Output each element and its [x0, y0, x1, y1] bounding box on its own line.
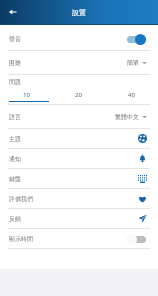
button[interactable]: 聲音 [0, 27, 158, 50]
staticText: 反饋 [9, 215, 21, 223]
button[interactable]: 20 [52, 89, 105, 100]
button[interactable]: Keyboard [0, 169, 158, 188]
button[interactable]: 顯示時間 [0, 229, 158, 248]
button[interactable]: Back [6, 5, 20, 19]
staticText: 鍵盤 [9, 175, 21, 183]
button[interactable]: 困難 [0, 51, 158, 74]
staticText: 主題 [9, 135, 21, 143]
staticText: 問題 [9, 78, 21, 86]
staticText: 設置 [72, 8, 86, 17]
button[interactable]: Theme [0, 129, 158, 148]
button[interactable]: Feedback [0, 209, 158, 228]
staticText: 20 [75, 91, 82, 99]
button[interactable]: 10 [0, 89, 52, 100]
staticText: 評價我們 [9, 195, 33, 203]
staticText: 困難 [9, 59, 21, 67]
button[interactable]: 40 [105, 89, 158, 100]
button[interactable]: Rate us [0, 189, 158, 208]
staticText: 語言 [9, 113, 21, 121]
button[interactable]: Notifications [0, 149, 158, 168]
staticText: 簡單 [127, 59, 139, 67]
staticText: 40 [128, 91, 135, 99]
staticText: 繁體中文 [115, 113, 139, 121]
staticText: 聲音 [9, 35, 21, 43]
staticText: 顯示時間 [9, 235, 33, 243]
button[interactable]: 語言 [0, 105, 158, 128]
staticText: 通知 [9, 155, 21, 163]
staticText: 10 [23, 91, 30, 99]
